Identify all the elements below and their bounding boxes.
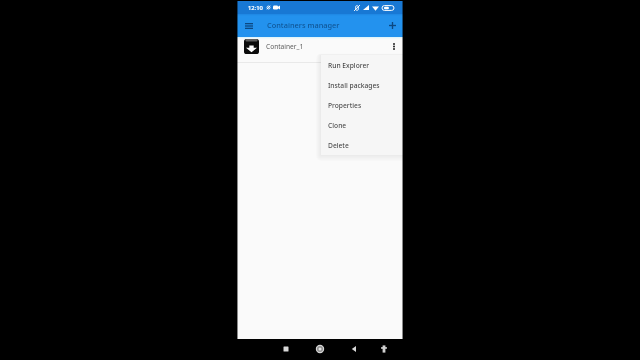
staticText: 12:10 (248, 4, 263, 12)
button[interactable]: Home (311, 340, 329, 358)
button[interactable]: Recents (277, 340, 295, 358)
button[interactable]: Run Explorer (321, 55, 403, 75)
button[interactable]: Navigation menu (237, 14, 260, 37)
button[interactable]: Install packages (321, 75, 403, 95)
staticText: Install packages (328, 81, 380, 90)
button[interactable]: Delete (321, 135, 403, 155)
button[interactable]: Add container (380, 14, 403, 37)
button[interactable]: Container_1 (237, 37, 403, 56)
staticText: Clone (328, 121, 347, 130)
button[interactable]: Clone (321, 115, 403, 135)
staticText: Run Explorer (328, 61, 370, 70)
button[interactable]: Properties (321, 95, 403, 115)
button[interactable]: More options (386, 37, 402, 56)
button[interactable]: Hide keyboard (375, 340, 393, 358)
staticText: Containers manager (267, 20, 340, 30)
staticText: Properties (328, 101, 362, 110)
button[interactable]: Back (345, 340, 363, 358)
staticText: Delete (328, 141, 349, 150)
staticText: Container_1 (266, 42, 304, 51)
